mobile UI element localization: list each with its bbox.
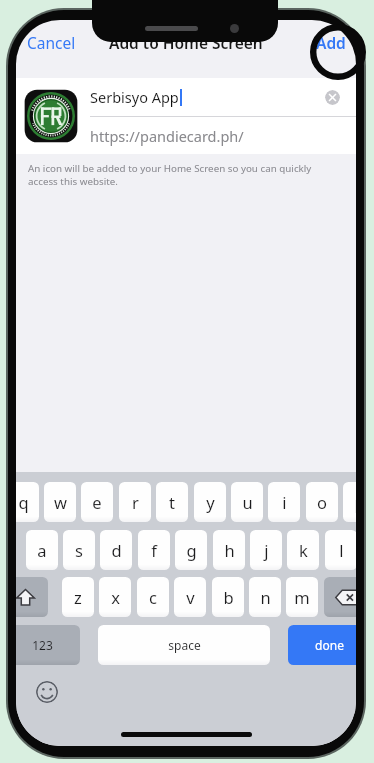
staticText: c [149,586,157,608]
staticText: s [75,539,83,561]
staticText: Add [316,32,346,53]
button[interactable]: j [250,530,282,570]
staticText: f [151,539,157,561]
staticText: i [282,491,287,513]
staticText: r [132,491,139,513]
staticText: t [169,491,175,513]
button[interactable]: p [343,482,356,522]
button[interactable]: Backspace [324,577,356,617]
button[interactable]: https://pandiecard.ph/ [90,117,356,154]
button[interactable]: Clear text [325,90,340,105]
button[interactable]: g [175,530,207,570]
button[interactable]: Emoji [36,681,58,703]
button[interactable]: l [325,530,356,570]
button[interactable]: o [306,482,338,522]
staticText: h [224,539,235,561]
button[interactable]: u [231,482,263,522]
button[interactable]: q [16,482,39,522]
staticText: m [294,586,310,608]
button[interactable]: f [138,530,170,570]
staticText: Serbisyo App [90,87,179,107]
staticText: w [54,491,67,513]
staticText: q [18,491,29,513]
staticText: k [299,539,308,561]
staticText: space [168,637,201,653]
button[interactable]: v [174,577,206,617]
button[interactable]: s [63,530,95,570]
button[interactable]: 123 [16,625,80,665]
staticText: Add to Home Screen [109,32,263,53]
staticText: An icon will be added to your Home Scree… [28,162,328,188]
button[interactable]: r [119,482,151,522]
staticText: g [186,539,197,561]
staticText: done [315,637,344,653]
button[interactable]: space [98,625,270,665]
button[interactable]: done [288,625,356,665]
staticText: a [37,539,47,561]
staticText: b [223,586,234,608]
button[interactable]: Add [312,26,350,59]
button[interactable]: a [26,530,58,570]
button[interactable]: Serbisyo App [90,78,356,116]
button[interactable]: w [44,482,76,522]
staticText: e [92,491,102,513]
button[interactable]: c [137,577,169,617]
staticText: o [317,491,327,513]
staticText: y [206,491,215,513]
staticText: Cancel [27,32,76,53]
staticText: https://pandiecard.ph/ [90,126,244,146]
button[interactable]: e [81,482,113,522]
button[interactable]: m [286,577,318,617]
button[interactable]: x [99,577,131,617]
button[interactable]: Cancel [23,26,80,59]
button[interactable]: t [156,482,188,522]
button[interactable]: Shift [16,577,48,617]
button[interactable]: y [194,482,226,522]
staticText: u [242,491,253,513]
staticText: 123 [32,637,53,653]
button[interactable]: h [213,530,245,570]
staticText: n [260,586,271,608]
button[interactable]: d [100,530,132,570]
button[interactable]: i [268,482,300,522]
staticText: p [354,491,356,513]
staticText: v [186,586,195,608]
button[interactable]: z [62,577,94,617]
button[interactable]: b [212,577,244,617]
staticText: x [111,586,120,608]
staticText: j [264,539,269,561]
staticText: d [111,539,122,561]
staticText: l [339,539,344,561]
button[interactable]: k [287,530,319,570]
button[interactable]: n [249,577,281,617]
staticText: z [74,586,82,608]
